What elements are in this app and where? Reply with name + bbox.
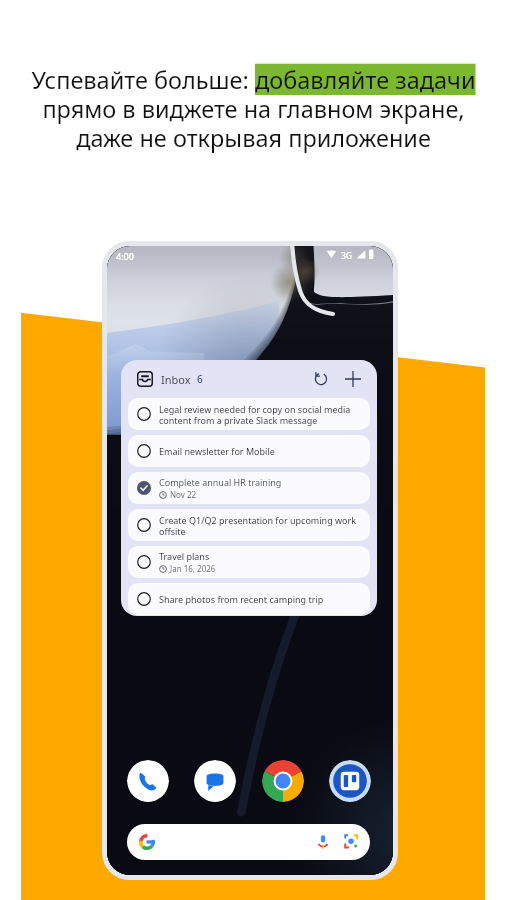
staticText: Share photos from recent camping trip <box>159 593 324 605</box>
staticText: 3G <box>341 250 353 262</box>
button[interactable]: Trello <box>329 760 371 802</box>
staticText: Complete annual HR training <box>159 476 282 488</box>
other: Inbox <box>137 371 153 387</box>
button[interactable]: Add task <box>341 367 365 391</box>
staticText: Успевайте больше: добавляйте задачи прям… <box>31 64 476 153</box>
staticText: Legal review needed for copy on social m… <box>159 403 364 426</box>
button[interactable]: Voice search <box>314 833 332 851</box>
button[interactable]: Share photos from recent camping trip <box>128 583 370 615</box>
button[interactable]: Messages <box>194 760 236 802</box>
staticText: 4:00 <box>116 250 134 262</box>
button[interactable]: Google Lens <box>342 833 360 851</box>
staticText: Jan 16, 2026 <box>170 563 216 574</box>
button[interactable]: Voice search <box>127 824 370 860</box>
staticText: 6 <box>197 372 203 386</box>
staticText: Nov 22 <box>170 489 197 500</box>
staticText: Email newsletter for Mobile <box>159 445 275 457</box>
staticText: Create Q1/Q2 presentation for upcoming w… <box>159 514 364 537</box>
button[interactable]: Travel plans <box>128 546 370 578</box>
button[interactable]: Complete annual HR training <box>128 472 370 504</box>
button[interactable]: Legal review needed for copy on social m… <box>128 398 370 430</box>
button[interactable]: Chrome <box>262 760 304 802</box>
button[interactable]: Create Q1/Q2 presentation for upcoming w… <box>128 509 370 541</box>
button[interactable]: Phone <box>127 760 169 802</box>
button[interactable]: Email newsletter for Mobile <box>128 435 370 467</box>
staticText: Inbox <box>161 372 191 387</box>
button[interactable]: Refresh <box>309 367 333 391</box>
staticText: Travel plans <box>159 550 210 562</box>
